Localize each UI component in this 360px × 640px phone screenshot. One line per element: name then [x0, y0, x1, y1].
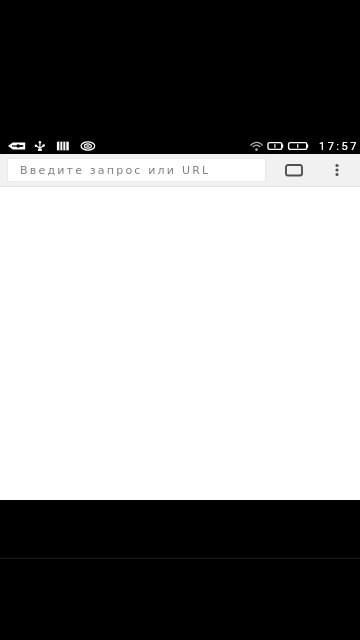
button[interactable]: More options: [321, 154, 353, 186]
staticText: Введите запрос или URL: [20, 164, 211, 177]
button[interactable]: Tabs: [278, 154, 310, 186]
button[interactable]: Введите запрос или URL: [7, 158, 266, 182]
staticText: 17:57: [319, 140, 359, 153]
